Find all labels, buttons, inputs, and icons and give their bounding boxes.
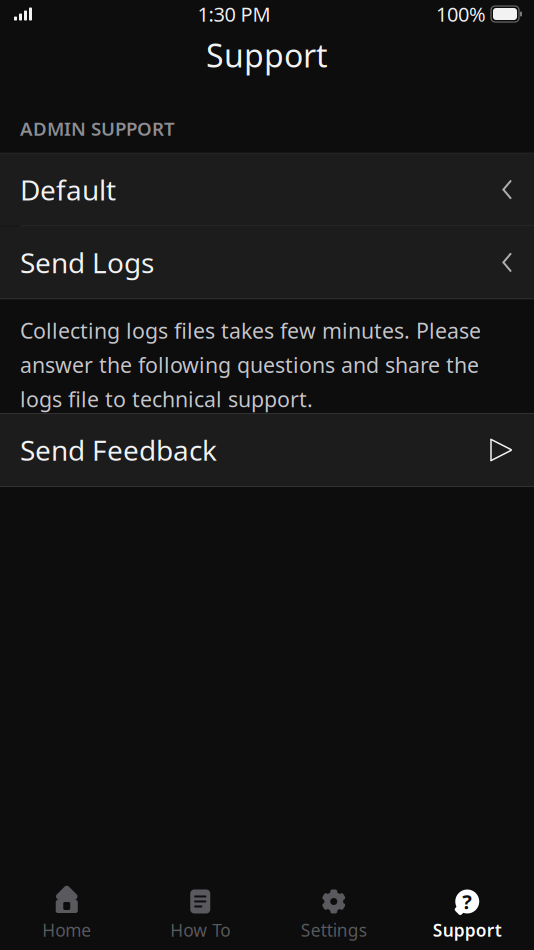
- staticText: Collecting logs files takes few minutes.…: [20, 316, 481, 413]
- staticText: ?: [462, 888, 472, 915]
- staticText: Home: [42, 918, 91, 941]
- staticText: Support: [206, 34, 328, 76]
- staticText: Settings: [301, 918, 367, 941]
- button[interactable]: How To: [133, 884, 267, 946]
- button[interactable]: Default: [0, 154, 534, 226]
- staticText: Default: [20, 171, 116, 208]
- button[interactable]: ?: [400, 884, 534, 946]
- staticText: ADMIN SUPPORT: [20, 116, 175, 141]
- button[interactable]: Send Feedback: [0, 414, 534, 486]
- staticText: Send Logs: [20, 244, 154, 281]
- button[interactable]: Send Logs: [0, 226, 534, 298]
- staticText: How To: [170, 918, 230, 941]
- staticText: Send Feedback: [20, 431, 217, 469]
- staticText: 100%: [436, 1, 486, 27]
- staticText: Support: [433, 918, 502, 941]
- staticText: 1:30 PM: [197, 1, 270, 27]
- button[interactable]: Settings: [267, 884, 400, 946]
- button[interactable]: Home: [0, 884, 133, 946]
